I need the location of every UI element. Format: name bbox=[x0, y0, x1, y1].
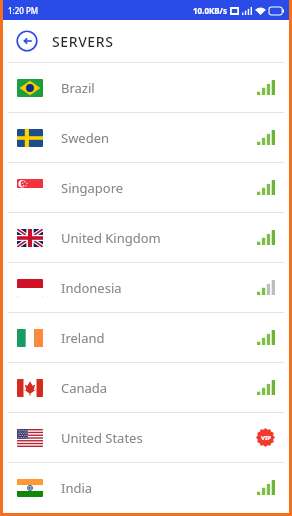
staticText: Canada bbox=[61, 379, 108, 397]
button[interactable]: Ireland bbox=[3, 313, 289, 362]
staticText: Singapore bbox=[61, 179, 124, 197]
staticText: Brazil bbox=[61, 79, 95, 97]
staticText: Ireland bbox=[61, 329, 105, 347]
button[interactable]: United States bbox=[3, 413, 289, 462]
button[interactable]: Sweden bbox=[3, 113, 289, 162]
staticText: Sweden bbox=[61, 129, 110, 147]
staticText: United Kingdom bbox=[61, 229, 161, 247]
button[interactable]: India bbox=[3, 463, 289, 512]
button[interactable]: Indonesia bbox=[3, 263, 289, 312]
staticText: India bbox=[61, 479, 93, 497]
staticText: SERVERS bbox=[52, 32, 114, 51]
staticText: 10.0KB/s bbox=[193, 5, 227, 16]
button[interactable]: Singapore bbox=[3, 163, 289, 212]
staticText: United States bbox=[61, 429, 143, 447]
button[interactable]: Canada bbox=[3, 363, 289, 412]
button[interactable]: Back bbox=[16, 30, 38, 52]
staticText: VIP bbox=[261, 434, 271, 442]
button[interactable]: Brazil bbox=[3, 63, 289, 112]
button[interactable]: United Kingdom bbox=[3, 213, 289, 262]
staticText: 1:20 PM bbox=[8, 5, 39, 16]
staticText: Indonesia bbox=[61, 279, 122, 297]
